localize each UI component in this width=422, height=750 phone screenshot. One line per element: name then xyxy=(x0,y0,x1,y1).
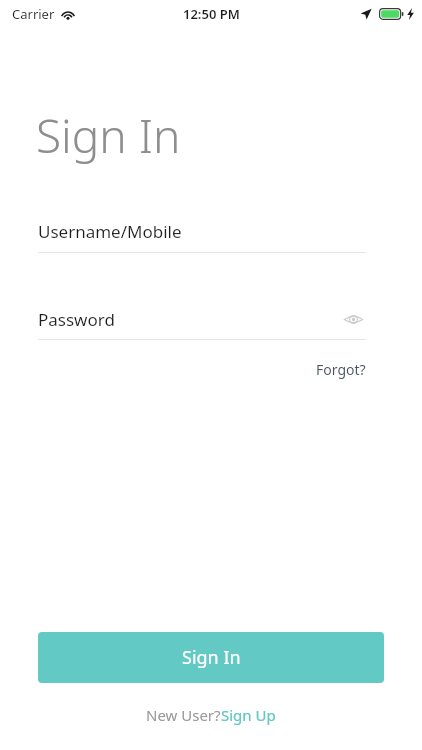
button[interactable]: Forgot? xyxy=(313,357,369,382)
staticText: New User? xyxy=(146,705,221,725)
button[interactable]: Username/Mobile xyxy=(38,220,366,253)
staticText: Carrier xyxy=(12,5,55,23)
button[interactable]: Sign In xyxy=(38,632,384,683)
staticText: Sign Up xyxy=(221,705,276,725)
staticText: Sign In xyxy=(182,645,241,670)
button[interactable]: Show password xyxy=(340,306,366,332)
button[interactable]: Sign Up xyxy=(221,705,276,725)
staticText: Forgot? xyxy=(316,360,366,379)
staticText: 12:50 PM xyxy=(183,5,240,23)
button[interactable]: Password xyxy=(38,306,366,340)
staticText: Username/Mobile xyxy=(38,220,182,243)
staticText: Sign In xyxy=(36,104,181,167)
staticText: Password xyxy=(38,308,115,331)
